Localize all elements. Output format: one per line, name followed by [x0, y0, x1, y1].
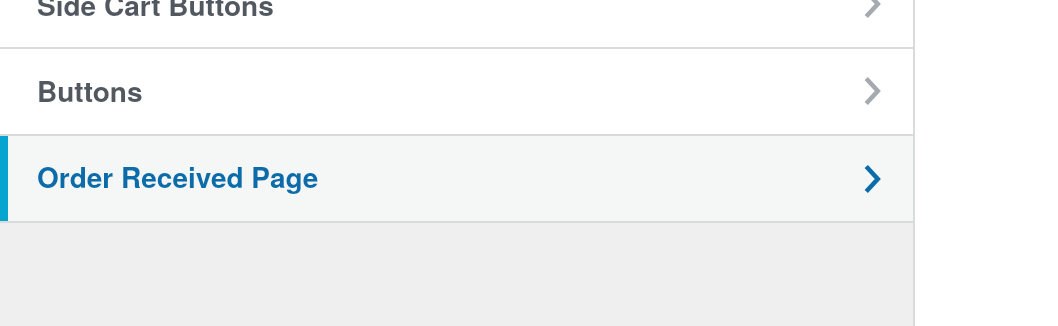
other: Open Buttons	[864, 76, 881, 106]
button[interactable]: Side Cart Buttons	[0, 0, 913, 49]
staticText: Order Received Page	[37, 156, 319, 196]
button[interactable]: Order Received Page	[0, 136, 913, 223]
other: Open Side Cart Buttons	[864, 0, 881, 19]
button[interactable]: Buttons	[0, 49, 913, 136]
staticText: Side Cart Buttons	[37, 0, 274, 24]
other: Open Order Received Page	[864, 164, 881, 194]
staticText: Buttons	[37, 70, 143, 110]
